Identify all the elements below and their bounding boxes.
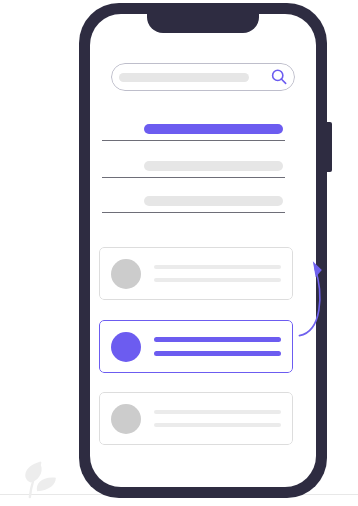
button[interactable] — [99, 320, 293, 373]
button[interactable] — [99, 392, 293, 445]
button[interactable] — [99, 247, 293, 300]
button[interactable] — [99, 118, 307, 141]
button[interactable]: Search — [111, 63, 295, 91]
button[interactable]: Search — [271, 69, 287, 85]
button[interactable] — [99, 155, 307, 178]
button[interactable] — [99, 190, 307, 213]
